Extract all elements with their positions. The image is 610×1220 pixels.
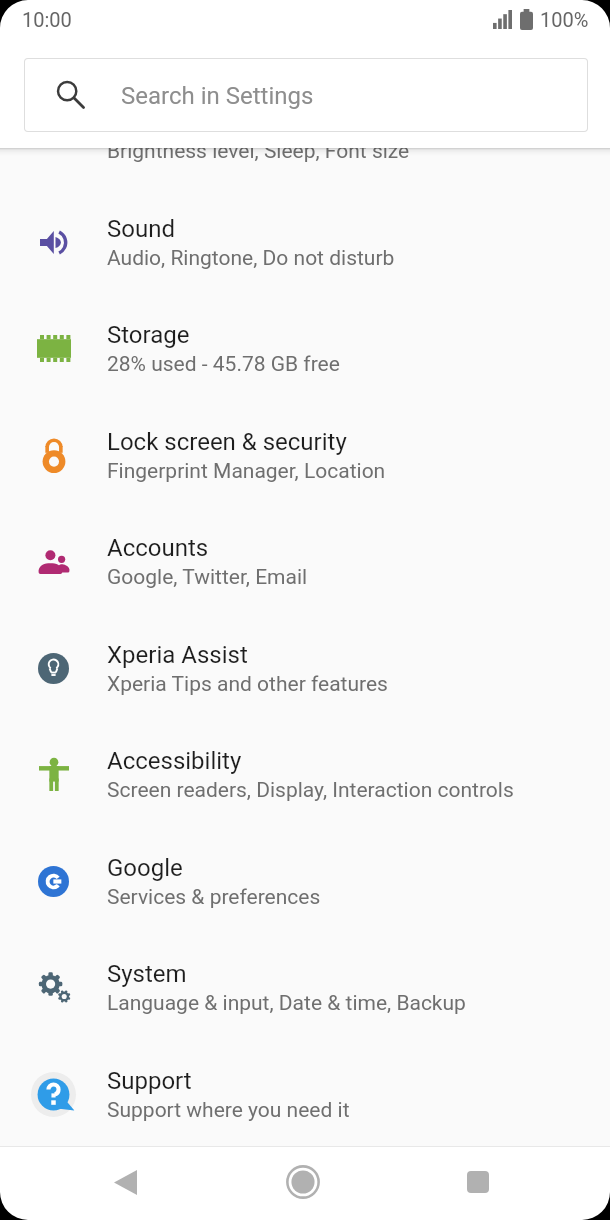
staticText: Fingerprint Manager, Location (107, 459, 386, 484)
button[interactable]: Sound (0, 189, 610, 296)
staticText: Search in Settings (121, 82, 314, 110)
button[interactable]: Support (0, 1041, 610, 1148)
staticText: Services & preferences (107, 885, 321, 910)
staticText: Lock screen & security (107, 428, 347, 456)
staticText: Audio, Ringtone, Do not disturb (107, 246, 395, 271)
button[interactable]: Search in Settings (25, 59, 587, 131)
staticText: Support (107, 1067, 192, 1095)
button[interactable] (273, 1152, 333, 1212)
staticText: System (107, 960, 187, 988)
staticText: 28% used - 45.78 GB free (107, 352, 340, 377)
staticText: 10:00 (22, 8, 72, 31)
staticText: Google (107, 854, 183, 882)
button[interactable]: Google (0, 828, 610, 935)
button[interactable]: Accounts (0, 508, 610, 615)
button[interactable] (95, 1152, 155, 1212)
staticText: Brightness level, Sleep, Font size (107, 139, 410, 164)
button[interactable]: Xperia Assist (0, 615, 610, 722)
staticText: Language & input, Date & time, Backup (107, 991, 466, 1016)
staticText: Display (107, 108, 185, 136)
staticText: Xperia Assist (107, 641, 248, 669)
staticText: Accessibility (107, 747, 242, 775)
staticText: Storage (107, 321, 190, 349)
staticText: 100% (540, 8, 589, 31)
button[interactable]: Storage (0, 295, 610, 402)
button[interactable]: Lock screen & security (0, 402, 610, 509)
staticText: Screen readers, Display, Interaction con… (107, 778, 514, 803)
staticText: Accounts (107, 534, 209, 562)
staticText: Google, Twitter, Email (107, 565, 308, 590)
staticText: Xperia Tips and other features (107, 672, 388, 697)
staticText: Support where you need it (107, 1098, 350, 1123)
button[interactable]: Display (0, 82, 610, 189)
button[interactable]: Accessibility (0, 721, 610, 828)
button[interactable]: System (0, 934, 610, 1041)
button[interactable] (448, 1152, 508, 1212)
staticText: Sound (107, 215, 175, 243)
